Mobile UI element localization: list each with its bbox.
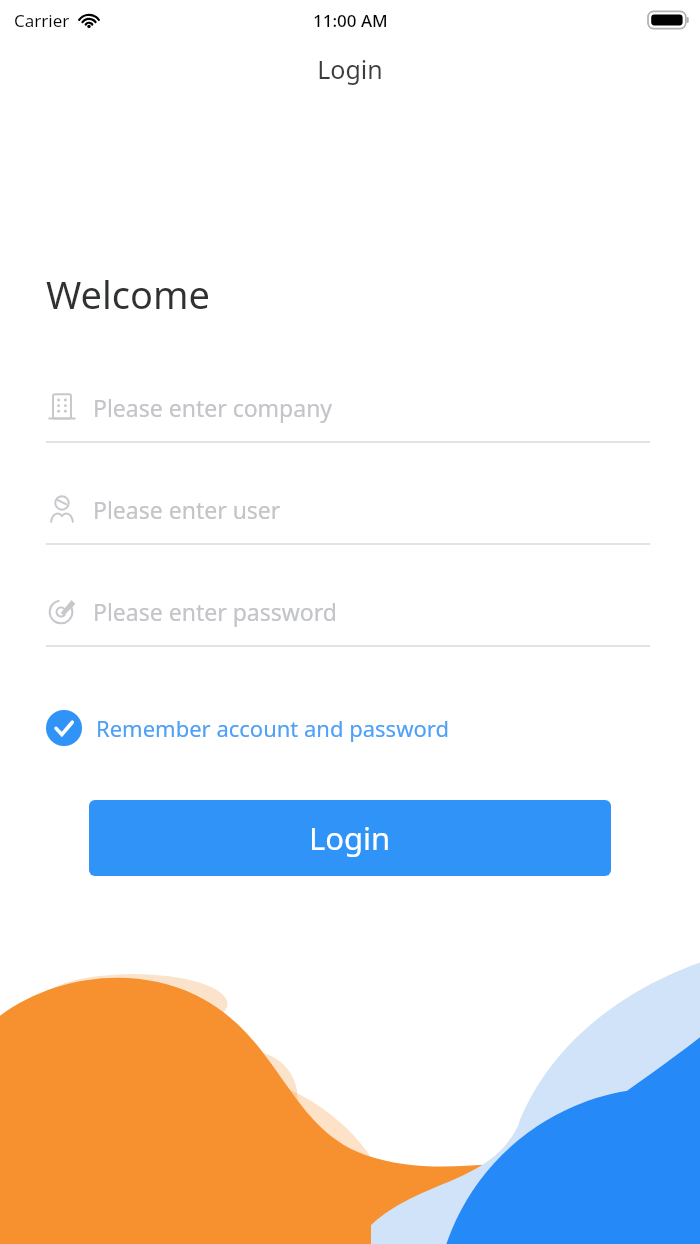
button[interactable]: Remember account and password bbox=[46, 710, 449, 746]
button[interactable]: Please enter company bbox=[46, 373, 650, 441]
staticText: Please enter password bbox=[93, 596, 337, 627]
button[interactable]: Please enter password bbox=[46, 577, 650, 645]
button[interactable]: Please enter user bbox=[46, 475, 650, 543]
staticText: 11:00 AM bbox=[313, 9, 388, 32]
staticText: Please enter user bbox=[93, 494, 281, 525]
staticText: Carrier bbox=[14, 9, 70, 32]
button[interactable]: Login bbox=[89, 800, 611, 876]
staticText: Login bbox=[309, 817, 391, 859]
staticText: Please enter company bbox=[93, 392, 333, 423]
staticText: Login bbox=[317, 52, 383, 86]
staticText: Welcome bbox=[46, 268, 211, 320]
staticText: Remember account and password bbox=[96, 713, 449, 743]
